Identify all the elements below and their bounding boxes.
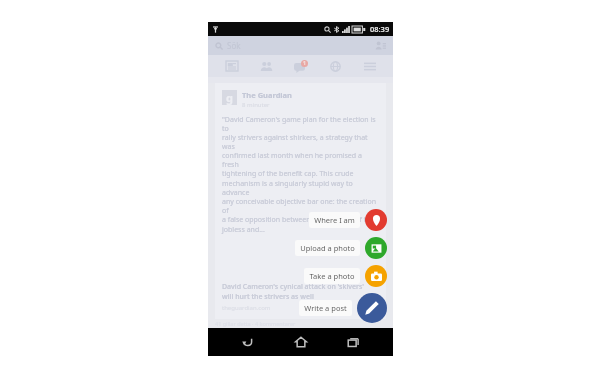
staticText: The Guardian [242, 90, 292, 100]
button[interactable]: Messages [290, 55, 312, 77]
staticText: any conceivable objective bar one: the c… [222, 197, 379, 215]
staticText: confirmed last month when he promised a … [222, 151, 379, 169]
staticText: 08:39 [370, 24, 390, 34]
staticText: a false opposition between the interests… [222, 215, 375, 225]
staticText: 1 [303, 60, 306, 67]
button[interactable]: Take a photo [304, 265, 387, 287]
staticText: mechanism is a singularly stupid way to … [222, 179, 379, 197]
button[interactable]: Friends [255, 55, 277, 77]
staticText: Where I am [314, 215, 355, 225]
button[interactable]: Back [235, 329, 261, 355]
staticText: g [226, 90, 233, 105]
staticText: Sök [227, 40, 241, 51]
button[interactable]: Upload a photo [295, 237, 387, 259]
staticText: David Cameron's cynical attack on 'skive… [222, 282, 365, 292]
button[interactable]: Menu [359, 55, 381, 77]
button[interactable]: Where I am [309, 209, 387, 231]
staticText: 8 minuter [242, 101, 270, 109]
staticText: Write a post [304, 303, 347, 313]
button[interactable]: Notifications [324, 55, 346, 77]
staticText: jobless and... [222, 225, 265, 235]
staticText: tightening of the benefit cap. This crud… [222, 169, 354, 179]
staticText: 41 gillar detta · 4 kommentarer [215, 320, 296, 327]
button[interactable]: Recents [340, 329, 366, 355]
button[interactable]: News Feed [221, 55, 243, 77]
button[interactable]: Home [288, 329, 314, 355]
button[interactable]: Write a post [299, 293, 387, 323]
staticText: "David Cameron's game plan for the elect… [222, 115, 379, 133]
staticText: Upload a photo [300, 243, 355, 253]
staticText: theguardian.com [222, 304, 271, 312]
staticText: rally strivers against shirkers, a strat… [222, 133, 379, 151]
staticText: will hurt the strivers as well [222, 292, 314, 302]
staticText: Take a photo [309, 271, 355, 281]
